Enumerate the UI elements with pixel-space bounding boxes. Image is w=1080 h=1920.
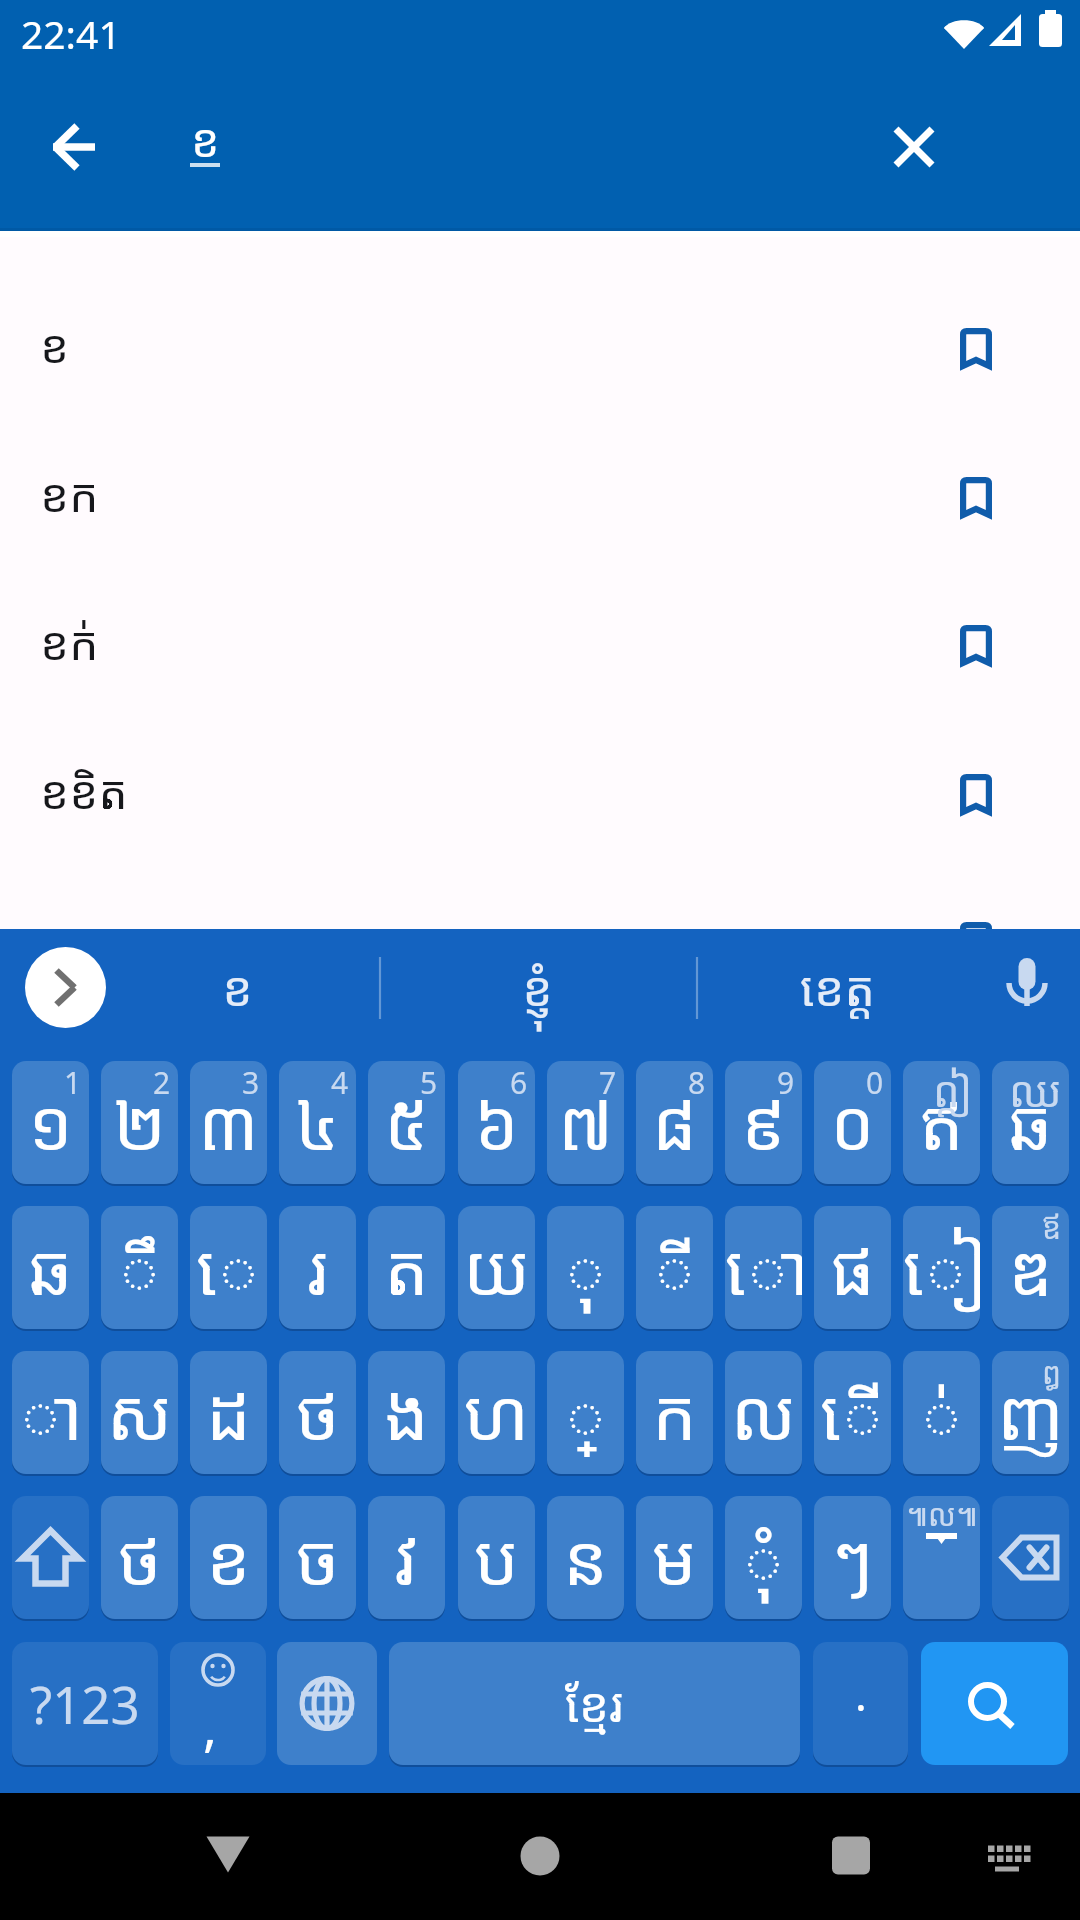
button[interactable]: Emoji [170, 1642, 266, 1765]
staticText: ម [652, 1510, 697, 1605]
button[interactable]: Voice input [987, 947, 1067, 1027]
staticText: ១ [28, 1075, 73, 1170]
button[interactable]: ក [636, 1351, 713, 1474]
staticText: ខ [40, 314, 70, 377]
button[interactable]: ខខុល [0, 868, 1080, 929]
button[interactable]: ០ [814, 1061, 891, 1184]
staticText: 5 [420, 1062, 438, 1103]
button[interactable]: ម [636, 1496, 713, 1619]
button[interactable]: Switch keyboard [968, 1793, 1048, 1920]
staticText: ខ្មែរ [565, 1671, 624, 1736]
button[interactable]: ស [101, 1351, 178, 1474]
button[interactable]: ខ [190, 1496, 267, 1619]
button[interactable]: ៣ [190, 1061, 267, 1184]
button[interactable]: ខ [107, 929, 367, 1046]
button[interactable]: ផ [814, 1206, 891, 1329]
staticText: ខ្ញុំ [522, 955, 553, 1020]
button[interactable]: ា [12, 1351, 89, 1474]
button[interactable]: ៦ [458, 1061, 535, 1184]
button[interactable]: ហ [458, 1351, 535, 1474]
button[interactable]: Search [921, 1642, 1068, 1765]
button[interactable]: ៩ [725, 1061, 802, 1184]
button[interactable]: ុ [547, 1206, 624, 1329]
button[interactable]: ខ [0, 274, 1080, 422]
button[interactable]: រ [279, 1206, 356, 1329]
button[interactable]: ថ [279, 1351, 356, 1474]
staticText: 1 [64, 1062, 82, 1103]
button[interactable]: ៤ [279, 1061, 356, 1184]
button[interactable]: ឌ [992, 1206, 1069, 1329]
button[interactable]: Bookmark [928, 894, 1024, 929]
button[interactable]: ើ [814, 1351, 891, 1474]
button[interactable]: ឹ [101, 1206, 178, 1329]
button[interactable]: ខេត្ត [707, 929, 967, 1046]
staticText: 22:41 [21, 7, 121, 60]
button[interactable]: ខក់ [0, 571, 1080, 719]
button[interactable]: យ [458, 1206, 535, 1329]
button[interactable]: ខ [160, 100, 270, 190]
button[interactable]: Bookmark [928, 746, 1024, 842]
staticText: ឆ [28, 1220, 73, 1315]
button[interactable]: ់ [903, 1351, 980, 1474]
staticText: ៨ [652, 1075, 697, 1170]
button[interactable]: ខក [0, 423, 1080, 571]
button[interactable]: Home [482, 1793, 598, 1920]
button[interactable]: ល [725, 1351, 802, 1474]
button[interactable]: Change language [277, 1642, 377, 1765]
button[interactable]: Recent apps [793, 1793, 909, 1920]
button[interactable]: Key [903, 1496, 980, 1619]
button[interactable]: ខខិត [0, 720, 1080, 868]
button[interactable]: ញ [992, 1351, 1069, 1474]
staticText: ៩ [741, 1075, 786, 1170]
button[interactable]: ច [279, 1496, 356, 1619]
staticText: ឆ [1008, 1075, 1053, 1170]
button[interactable]: េ [190, 1206, 267, 1329]
button[interactable]: ឆ [992, 1061, 1069, 1184]
button[interactable]: ខ្ញុំ [407, 929, 667, 1046]
staticText: ោ [725, 1220, 802, 1315]
staticText: ស [107, 1365, 172, 1460]
button[interactable]: ខ្មែរ [389, 1642, 800, 1765]
button[interactable]: វ [368, 1496, 445, 1619]
staticText: . [855, 1664, 867, 1724]
staticText: 2 [153, 1062, 171, 1103]
button[interactable]: ដ [190, 1351, 267, 1474]
button[interactable]: ្ [547, 1351, 624, 1474]
button[interactable]: More suggestions [25, 947, 106, 1028]
staticText: ០ [830, 1075, 875, 1170]
staticText: ឹ [117, 1220, 162, 1315]
staticText: ឌ [1008, 1220, 1053, 1315]
button[interactable]: ោ [725, 1206, 802, 1329]
staticText: វ [395, 1510, 418, 1605]
button[interactable]: ន [547, 1496, 624, 1619]
button[interactable]: ឆ [12, 1206, 89, 1329]
button[interactable]: Bookmark [928, 449, 1024, 545]
button[interactable]: ប [458, 1496, 535, 1619]
button[interactable]: Back [32, 105, 116, 189]
button[interactable]: ២ [101, 1061, 178, 1184]
staticText: ឥ [919, 1075, 964, 1170]
staticText: ប [474, 1510, 519, 1605]
button[interactable]: ៥ [368, 1061, 445, 1184]
button[interactable]: Close [872, 105, 956, 189]
button[interactable]: Backspace [992, 1496, 1069, 1619]
button[interactable]: ត [368, 1206, 445, 1329]
button[interactable]: ថ [101, 1496, 178, 1619]
button[interactable]: ៗ [814, 1496, 891, 1619]
button[interactable]: ៧ [547, 1061, 624, 1184]
button[interactable]: . [813, 1642, 908, 1765]
button[interactable]: ១ [12, 1061, 89, 1184]
staticText: ល [731, 1365, 796, 1460]
button[interactable]: ឥ [903, 1061, 980, 1184]
button[interactable]: Bookmark [928, 300, 1024, 396]
staticText: ា [18, 1365, 83, 1460]
button[interactable]: Bookmark [928, 597, 1024, 693]
button[interactable]: ៨ [636, 1061, 713, 1184]
button[interactable]: ?123 [12, 1642, 158, 1765]
button[interactable]: Hide keyboard [170, 1793, 286, 1920]
button[interactable]: ៀ [903, 1206, 980, 1329]
button[interactable]: ី [636, 1206, 713, 1329]
button[interactable]: ុំ [725, 1496, 802, 1619]
button[interactable]: Shift [12, 1496, 89, 1619]
button[interactable]: ង [368, 1351, 445, 1474]
